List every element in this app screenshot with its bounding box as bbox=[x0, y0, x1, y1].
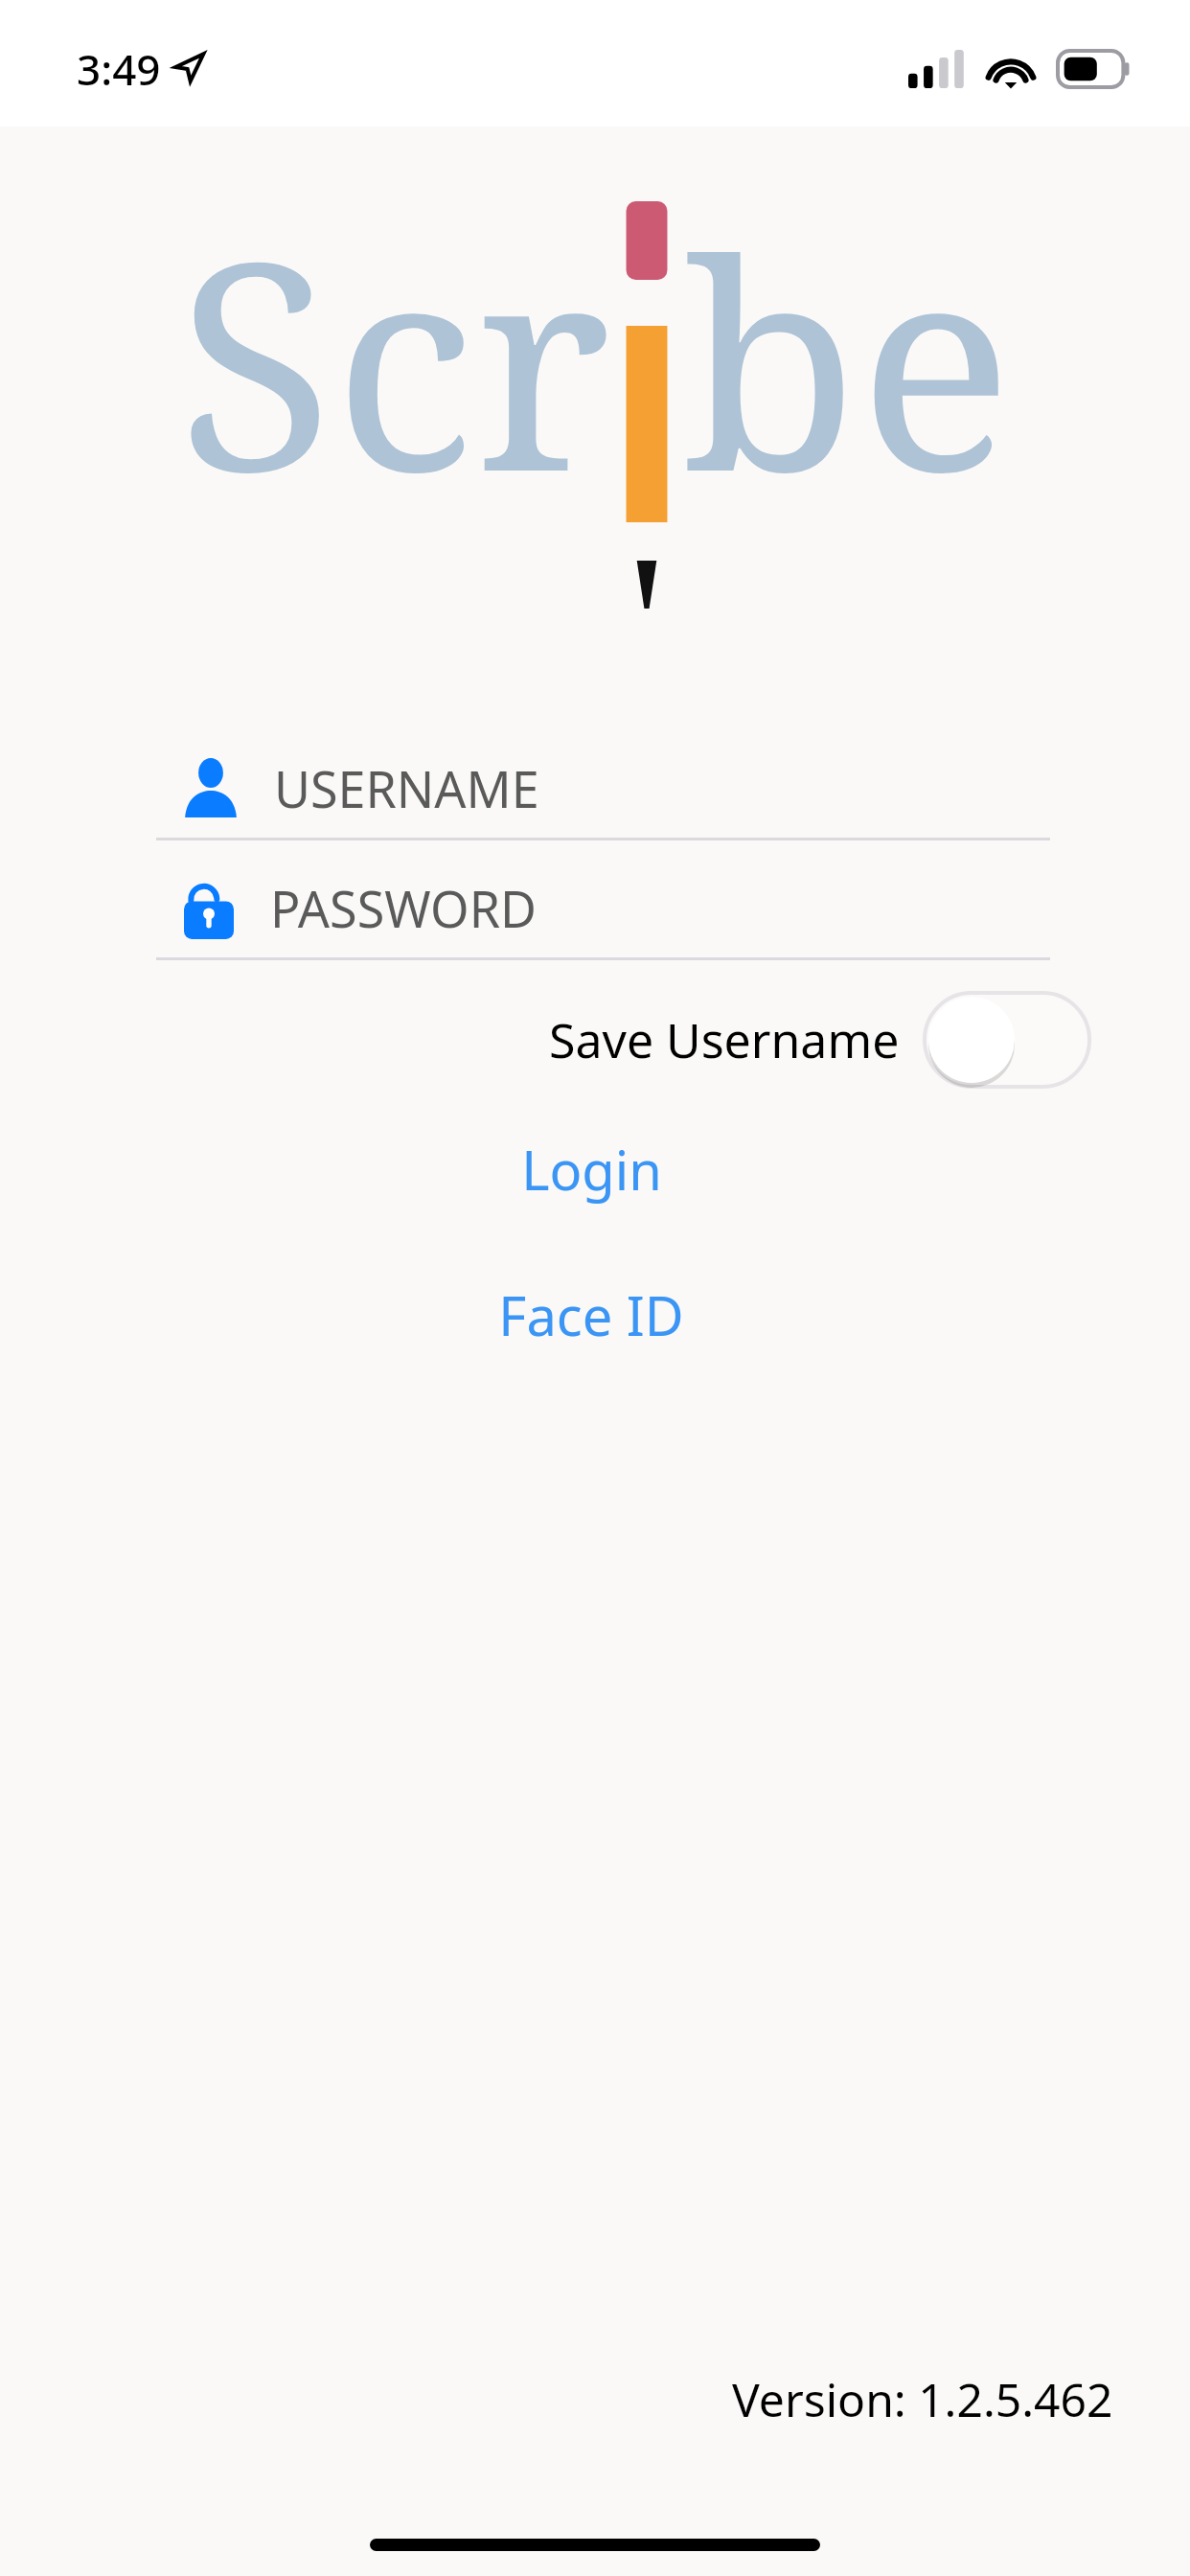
button[interactable]: Password bbox=[0, 858, 1190, 957]
button[interactable]: Username bbox=[0, 738, 1190, 838]
staticText: PASSWORD bbox=[270, 874, 537, 942]
other: Password bbox=[184, 876, 234, 939]
staticText: Face ID bbox=[498, 1278, 684, 1351]
staticText: Save Username bbox=[549, 1007, 900, 1072]
button[interactable]: Login bbox=[0, 1133, 1190, 1206]
button[interactable]: Face ID bbox=[0, 1278, 1190, 1351]
staticText: be bbox=[682, 163, 1013, 555]
staticText: Scr bbox=[177, 163, 611, 555]
staticText: Login bbox=[521, 1133, 662, 1206]
button[interactable]: Save Username toggle bbox=[925, 993, 1089, 1087]
other: Username bbox=[184, 758, 238, 817]
staticText: USERNAME bbox=[274, 754, 539, 822]
staticText: Version: 1.2.5.462 bbox=[732, 2368, 1113, 2430]
staticText: 3:49 bbox=[77, 40, 161, 98]
